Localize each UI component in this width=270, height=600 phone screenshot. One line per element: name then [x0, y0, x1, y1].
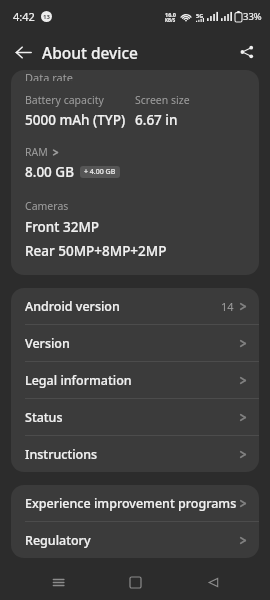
staticText: 16.0 — [165, 11, 176, 18]
button[interactable]: Instructions — [11, 436, 259, 472]
staticText: 5000 mAh (TYP) — [25, 111, 126, 129]
staticText: 8.00 GB — [25, 163, 74, 181]
staticText: Data rate — [25, 70, 73, 81]
staticText: Experience improvement programs — [25, 495, 239, 512]
staticText: 5G — [196, 12, 204, 19]
staticText: Cameras — [25, 199, 69, 213]
button[interactable]: Legal information — [11, 362, 259, 398]
staticText: Version — [25, 335, 239, 352]
staticText: Rear 50MP+8MP+2MP — [25, 242, 167, 260]
button[interactable]: Back — [6, 35, 40, 69]
staticText: 6.67 in — [135, 111, 178, 129]
staticText: RAM — [25, 145, 48, 159]
button[interactable]: Status — [11, 399, 259, 435]
staticText: Instructions — [25, 446, 239, 463]
staticText: KB/S — [165, 17, 176, 23]
staticText: Battery capacity — [25, 93, 104, 107]
staticText: 13 — [43, 13, 50, 21]
button[interactable]: Regulatory — [11, 522, 259, 558]
button[interactable]: Back — [193, 564, 233, 600]
button[interactable]: Share — [231, 36, 263, 68]
staticText: Screen size — [135, 93, 190, 107]
button[interactable]: Android version — [11, 288, 259, 324]
staticText: 4:42 — [13, 9, 35, 24]
button[interactable]: Experience improvement programs — [11, 485, 259, 521]
staticText: Front 32MP — [25, 218, 100, 236]
staticText: About device — [42, 42, 138, 63]
button[interactable]: Version — [11, 325, 259, 361]
staticText: Status — [25, 409, 239, 426]
staticText: 14 — [221, 299, 234, 314]
button[interactable]: RAM — [25, 145, 59, 159]
button[interactable]: Home — [115, 564, 155, 600]
button[interactable]: Recents — [38, 564, 78, 600]
staticText: Android version — [25, 298, 221, 315]
staticText: Legal information — [25, 372, 239, 389]
staticText: + 4.00 GB — [84, 167, 116, 177]
staticText: Regulatory — [25, 532, 239, 549]
staticText: 33% — [243, 10, 262, 23]
